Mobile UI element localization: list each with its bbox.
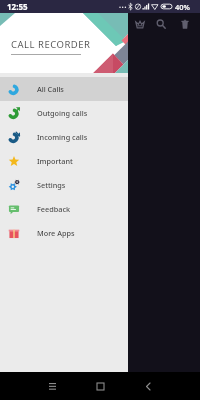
button[interactable]: All Calls: [0, 77, 128, 101]
button[interactable]: Delete: [174, 13, 196, 35]
button[interactable]: Feedback: [0, 197, 128, 221]
staticText: CALL RECORDER: [11, 38, 91, 51]
staticText: All Calls: [37, 84, 64, 94]
staticText: 40%: [175, 2, 190, 12]
staticText: Incoming calls: [37, 132, 88, 142]
staticText: 12:55: [7, 1, 28, 12]
staticText: More Apps: [37, 228, 75, 238]
staticText: Important: [37, 156, 73, 166]
staticText: Feedback: [37, 204, 71, 214]
staticText: Settings: [37, 180, 66, 190]
button[interactable]: Incoming calls: [0, 125, 128, 149]
staticText: Outgoing calls: [37, 108, 88, 118]
button[interactable]: Back: [134, 372, 162, 400]
button[interactable]: Home: [86, 372, 114, 400]
button[interactable]: Recents: [38, 372, 66, 400]
button[interactable]: Important: [0, 149, 128, 173]
button[interactable]: More Apps: [0, 221, 128, 245]
button[interactable]: Search: [150, 13, 172, 35]
button[interactable]: Settings: [0, 173, 128, 197]
button[interactable]: Outgoing calls: [0, 101, 128, 125]
button[interactable]: Premium: [129, 13, 151, 35]
